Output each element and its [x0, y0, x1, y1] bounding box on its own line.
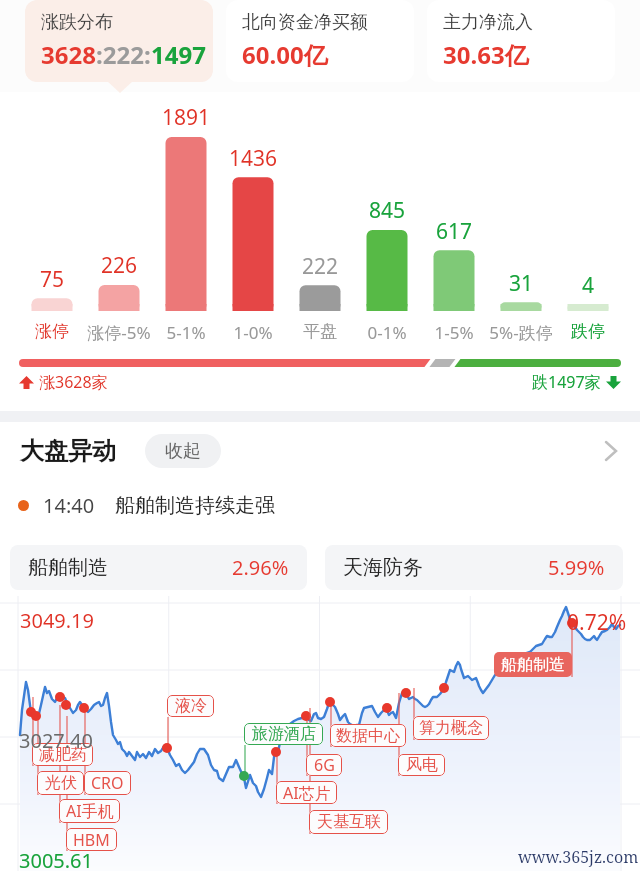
staticText: 涨跌分布 — [41, 11, 113, 34]
staticText: 减肥药 — [39, 745, 87, 765]
staticText: 3005.61 — [19, 847, 93, 871]
staticText: 3049.19 — [20, 607, 94, 634]
staticText: 液冷 — [175, 696, 207, 716]
staticText: 光伏 — [45, 773, 77, 793]
staticText: 涨3628家 — [39, 371, 108, 393]
button[interactable]: AI芯片 — [276, 781, 337, 804]
button[interactable]: 数据中心 — [330, 724, 406, 747]
button[interactable]: 涨跌分布 — [25, 0, 213, 82]
button[interactable]: 减肥药 — [32, 743, 93, 766]
staticText: 5%-跌停 — [473, 321, 569, 344]
staticText: www.365jz.com — [518, 846, 639, 868]
staticText: 5.99% — [548, 554, 605, 581]
staticText: 0-1% — [339, 321, 435, 344]
button[interactable]: 天基互联 — [309, 810, 388, 834]
staticText: 风电 — [406, 755, 438, 775]
button[interactable]: 天海防务 — [325, 545, 623, 590]
staticText: 数据中心 — [336, 726, 400, 746]
button[interactable]: 算力概念 — [413, 716, 489, 740]
staticText: 617 — [409, 217, 499, 246]
button[interactable]: 风电 — [398, 754, 445, 776]
staticText: 主力净流入 — [443, 11, 533, 34]
staticText: 226 — [74, 251, 164, 280]
staticText: 船舶制造 — [28, 555, 108, 580]
staticText: 845 — [342, 196, 432, 225]
staticText: 3628 — [41, 38, 96, 71]
staticText: AI手机 — [66, 800, 114, 822]
button[interactable]: 北向资金净买额 — [226, 0, 414, 82]
staticText: 天基互联 — [317, 812, 381, 832]
staticText: 天海防务 — [343, 555, 423, 580]
button[interactable]: 14:40 — [0, 479, 640, 532]
button[interactable]: 收起 — [145, 434, 221, 468]
staticText: HBM — [73, 829, 110, 851]
staticText: 1-0% — [205, 321, 301, 344]
staticText: 1497 — [151, 38, 206, 71]
staticText: 1891 — [141, 103, 231, 132]
staticText: 4 — [543, 271, 633, 300]
staticText: 75 — [7, 265, 97, 294]
button[interactable]: 6G — [306, 754, 342, 776]
button[interactable]: 船舶制造 — [494, 652, 572, 677]
staticText: 1436 — [208, 144, 298, 173]
staticText: 31 — [476, 269, 566, 298]
staticText: 收起 — [165, 440, 201, 463]
staticText: 船舶制造持续走强 — [115, 493, 275, 518]
staticText: 跌1497家 — [532, 371, 601, 393]
button[interactable]: 液冷 — [167, 695, 214, 717]
staticText: 2.96% — [232, 554, 289, 581]
button[interactable]: 主力净流入 — [427, 0, 615, 82]
staticText: 平盘 — [272, 321, 368, 342]
staticText: 旅游酒店 — [252, 724, 316, 744]
staticText: 1-5% — [406, 321, 502, 344]
staticText: 60.00亿 — [242, 38, 328, 71]
button[interactable]: More — [598, 438, 624, 464]
staticText: 30.63亿 — [443, 38, 529, 71]
staticText: 北向资金净买额 — [242, 11, 368, 34]
button[interactable]: CRO — [84, 771, 131, 795]
staticText: 涨停-5% — [71, 321, 167, 344]
staticText: 0.72% — [567, 608, 627, 637]
staticText: 5-1% — [138, 321, 234, 344]
staticText: 14:40 — [43, 492, 95, 519]
staticText: 算力概念 — [419, 718, 483, 738]
staticText: AI芯片 — [283, 782, 331, 804]
button[interactable]: 光伏 — [37, 771, 84, 795]
button[interactable]: 船舶制造 — [10, 545, 307, 590]
button[interactable]: 大盘异动 — [0, 422, 640, 479]
staticText: 6G — [314, 754, 335, 776]
staticText: 3027.40 — [19, 727, 93, 754]
staticText: :222: — [96, 38, 151, 71]
staticText: 船舶制造 — [501, 655, 565, 675]
button[interactable]: AI手机 — [59, 799, 120, 823]
button[interactable]: 旅游酒店 — [244, 723, 323, 745]
staticText: CRO — [91, 772, 124, 794]
staticText: 大盘异动 — [20, 436, 116, 466]
staticText: 222 — [275, 252, 365, 281]
button[interactable]: HBM — [66, 828, 117, 851]
staticText: 涨停 — [4, 321, 100, 342]
staticText: 跌停 — [540, 321, 636, 342]
